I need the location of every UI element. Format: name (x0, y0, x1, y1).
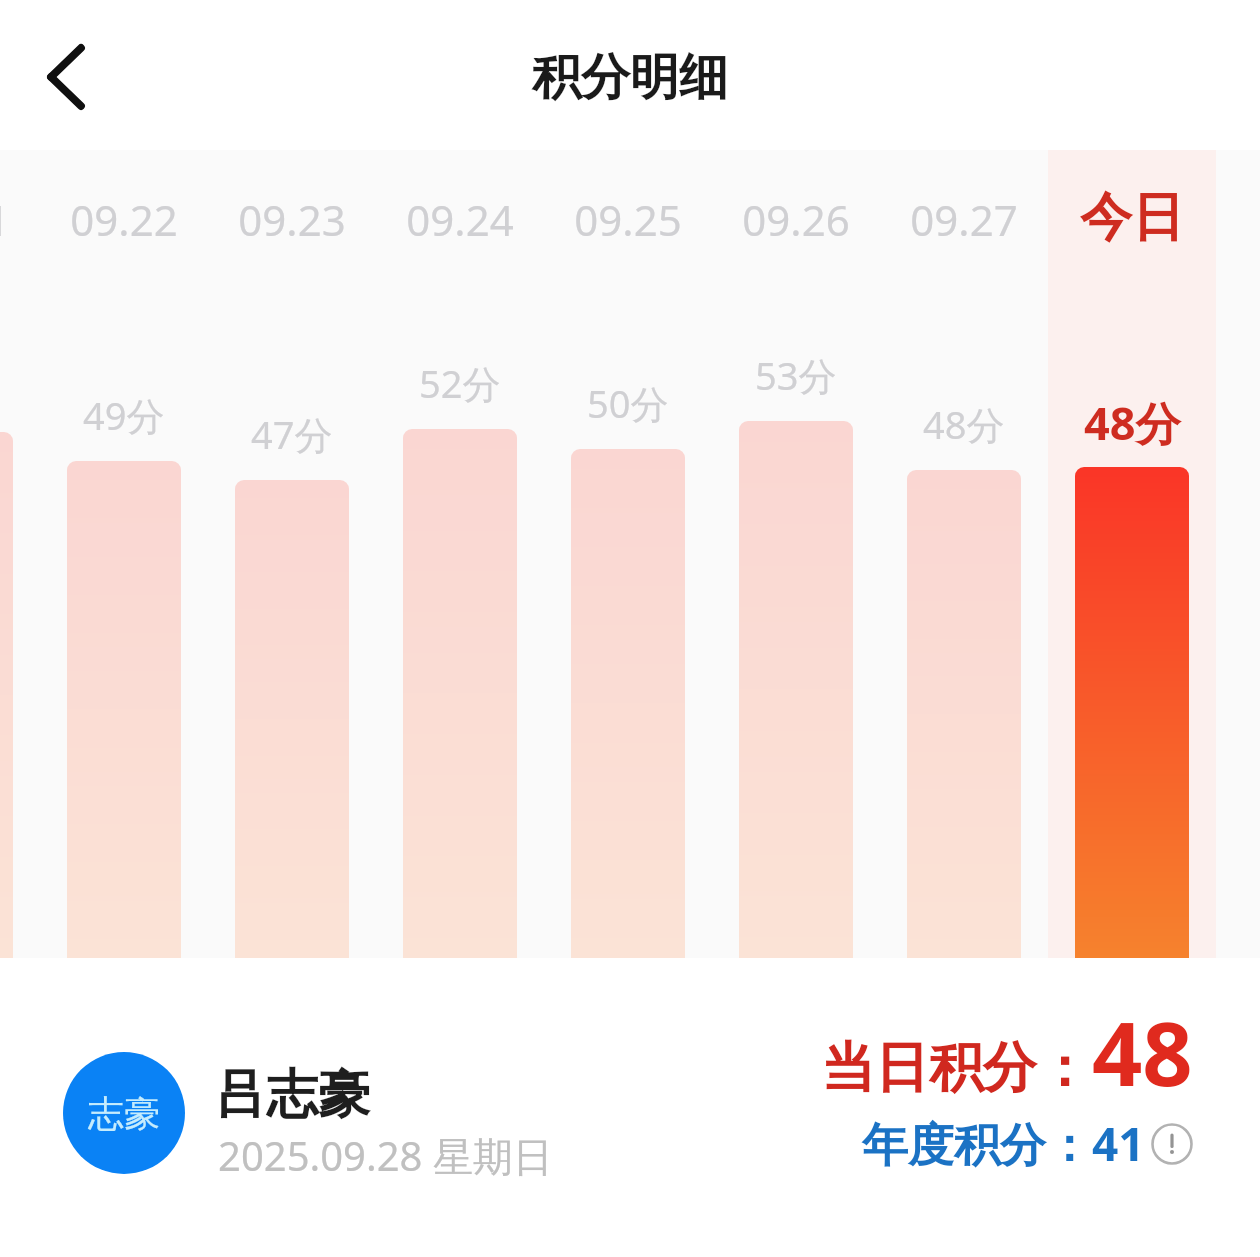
button[interactable]: 09.23 (208, 150, 376, 958)
staticText: 09.23 (238, 191, 346, 248)
staticText: 09.26 (742, 191, 850, 248)
staticText: 53分 (755, 349, 837, 401)
staticText: 49分 (83, 389, 165, 441)
button[interactable]: 今日 (1048, 150, 1216, 958)
staticText: 52分 (419, 357, 501, 409)
staticText: 09.25 (574, 191, 682, 248)
staticText: 当日积分： (821, 1034, 1091, 1102)
staticText: 积分明细 (532, 47, 728, 109)
button[interactable]: 09.27 (880, 150, 1048, 958)
staticText: 47分 (251, 408, 333, 460)
staticText: 年度积分：41 (862, 1112, 1145, 1175)
staticText: 09.21 (0, 191, 10, 248)
button[interactable]: 09.21 (0, 150, 40, 958)
staticText: 志豪 (88, 1091, 160, 1136)
button[interactable]: Back (11, 22, 121, 132)
staticText: 48 (1092, 992, 1193, 1112)
staticText: 48分 (1084, 392, 1181, 453)
staticText: 09.24 (406, 191, 514, 248)
staticText: 48分 (923, 398, 1005, 450)
staticText: 2025.09.28 星期日 (218, 1128, 553, 1183)
staticText: 09.22 (70, 191, 178, 248)
button[interactable]: 09.24 (376, 150, 544, 958)
staticText: 09.27 (910, 191, 1018, 248)
staticText: 50分 (587, 377, 669, 429)
staticText: 吕志豪 (214, 1062, 370, 1128)
button[interactable]: 09.25 (544, 150, 712, 958)
button[interactable]: 09.26 (712, 150, 880, 958)
button[interactable]: 年度积分：41 (856, 1106, 1194, 1170)
button[interactable]: 09.22 (40, 150, 208, 958)
button[interactable]: 志豪 (50, 1034, 610, 1194)
staticText: 今日 (1080, 185, 1184, 251)
button[interactable]: Points info (1150, 1122, 1194, 1166)
button[interactable]: 当日积分： (815, 988, 1205, 1112)
